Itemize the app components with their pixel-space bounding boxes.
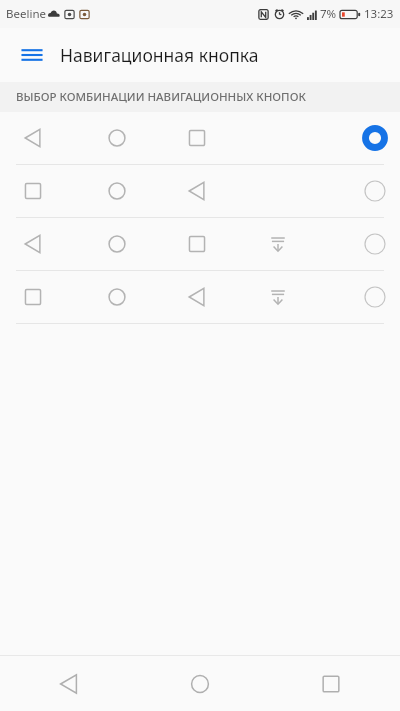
staticText: ВЫБОР КОМБИНАЦИИ НАВИГАЦИОННЫХ КНОПОК (16, 89, 306, 105)
staticText: 13:23 (364, 6, 394, 22)
button[interactable]: Open navigation menu (12, 35, 52, 75)
button[interactable]: Navigation button combination option (0, 165, 400, 218)
button[interactable]: Navigation button combination option (0, 218, 400, 271)
button[interactable]: Recent apps (307, 660, 355, 708)
staticText: 7% (320, 6, 337, 22)
button[interactable]: Home (176, 660, 224, 708)
staticText: Навигационная кнопка (60, 43, 259, 67)
button[interactable]: Navigation button combination option (0, 112, 400, 165)
staticText: Beeline (6, 6, 46, 22)
button[interactable]: Back (45, 660, 93, 708)
button[interactable]: Navigation button combination option (0, 271, 400, 324)
